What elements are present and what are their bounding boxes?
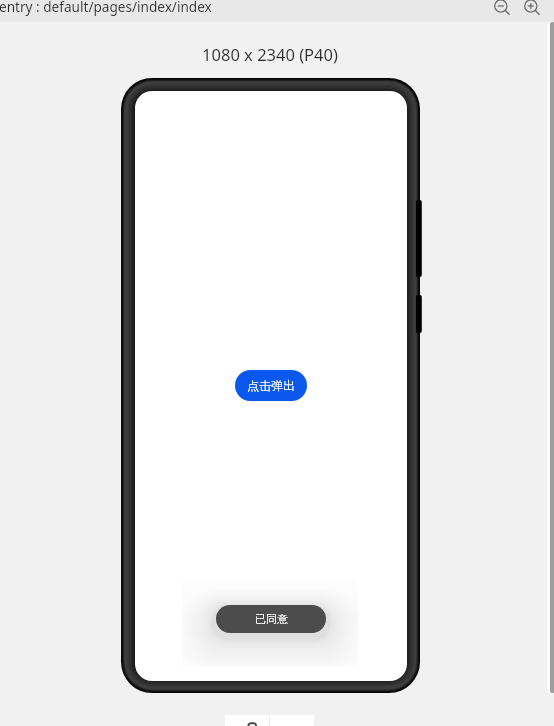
button[interactable]: Zoom out [492, 0, 512, 18]
staticText: 1080 x 2340 (P40) [202, 43, 338, 65]
staticText: 点击弹出 [247, 378, 295, 393]
staticText: entry : default/pages/index/index [0, 0, 212, 16]
button[interactable]: Zoom in [522, 0, 542, 18]
button[interactable]: 已同意 [216, 605, 326, 633]
button[interactable]: Portrait orientation [225, 715, 269, 726]
button[interactable]: 点击弹出 [235, 370, 307, 401]
staticText: 已同意 [255, 612, 288, 626]
